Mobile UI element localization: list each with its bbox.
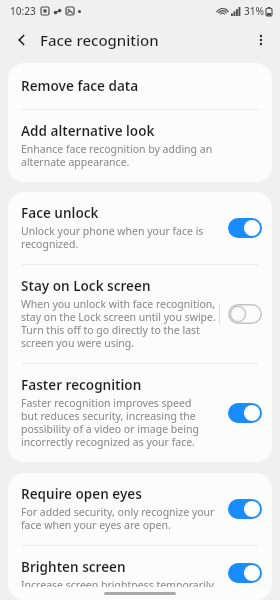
staticText: Faster recognition <box>21 376 142 394</box>
staticText: For added security, only recognize your … <box>21 505 215 532</box>
staticText: When you unlock with face recognition, s… <box>21 297 216 350</box>
staticText: Face unlock <box>21 204 99 222</box>
button[interactable]: Back <box>8 26 36 54</box>
staticText: Require open eyes <box>21 485 142 503</box>
staticText: Increase screen brightness temporarily s… <box>21 578 214 587</box>
button[interactable]: Face unlock <box>8 192 272 264</box>
staticText: Unlock your phone when your face is reco… <box>21 224 204 251</box>
staticText: Face recognition <box>40 30 159 50</box>
button[interactable]: Remove face data <box>8 63 272 109</box>
button[interactable]: Require open eyes <box>8 473 272 545</box>
staticText: Stay on Lock screen <box>21 277 151 295</box>
staticText: Faster recognition improves speed but re… <box>21 396 199 449</box>
button[interactable]: Enabled <box>228 563 262 583</box>
staticText: Enhance face recognition by adding an al… <box>21 142 213 169</box>
staticText: Add alternative look <box>21 122 155 140</box>
staticText: 31% <box>244 4 264 18</box>
button[interactable]: Faster recognition <box>8 364 272 462</box>
button[interactable]: Enabled <box>228 499 262 519</box>
button[interactable]: Disabled <box>228 304 262 324</box>
staticText: Brighten screen <box>21 558 126 576</box>
button[interactable]: Brighten screen <box>8 546 272 600</box>
staticText: 10:23 <box>10 4 36 18</box>
button[interactable]: Enabled <box>228 218 262 238</box>
button[interactable]: More options <box>247 26 275 54</box>
button[interactable]: Stay on Lock screen <box>8 265 272 363</box>
staticText: Remove face data <box>21 77 139 95</box>
button[interactable]: Enabled <box>228 403 262 423</box>
button[interactable]: Add alternative look <box>8 110 272 182</box>
